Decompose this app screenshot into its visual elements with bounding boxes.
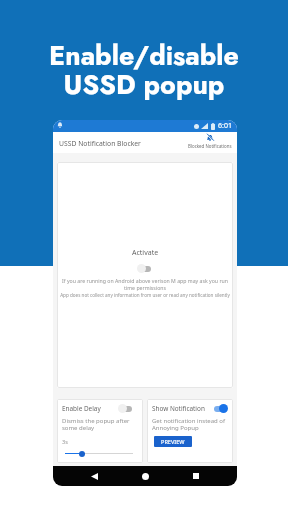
button[interactable]: Blocked Notifications <box>188 134 232 149</box>
staticText: Get notification instead of Annoying Pop… <box>152 417 228 432</box>
staticText: 6:01 <box>218 121 232 131</box>
button[interactable]: Back <box>84 466 104 486</box>
staticText: Dismiss the popup after some delay <box>62 417 134 432</box>
staticText: Enable Delay <box>62 404 101 413</box>
staticText: PREVIEW <box>161 438 185 446</box>
button[interactable]: Recents <box>186 466 206 486</box>
button[interactable]: Home <box>135 466 155 486</box>
staticText: App does not collect any information fro… <box>60 292 230 298</box>
staticText: Show Notification <box>152 404 205 413</box>
staticText: 3s <box>62 438 68 446</box>
staticText: Blocked Notifications <box>188 143 232 149</box>
button[interactable]: Delay slider <box>62 450 134 457</box>
button[interactable]: PREVIEW <box>154 436 192 447</box>
button[interactable]: On <box>212 404 228 413</box>
button[interactable]: Off <box>137 264 153 273</box>
staticText: If you are running on Android above veri… <box>60 277 230 291</box>
button[interactable]: Off <box>118 404 134 413</box>
staticText: Enable/disable USSD popup <box>0 36 288 104</box>
staticText: USSD Notification Blocker <box>59 139 141 148</box>
staticText: Activate <box>132 248 159 258</box>
